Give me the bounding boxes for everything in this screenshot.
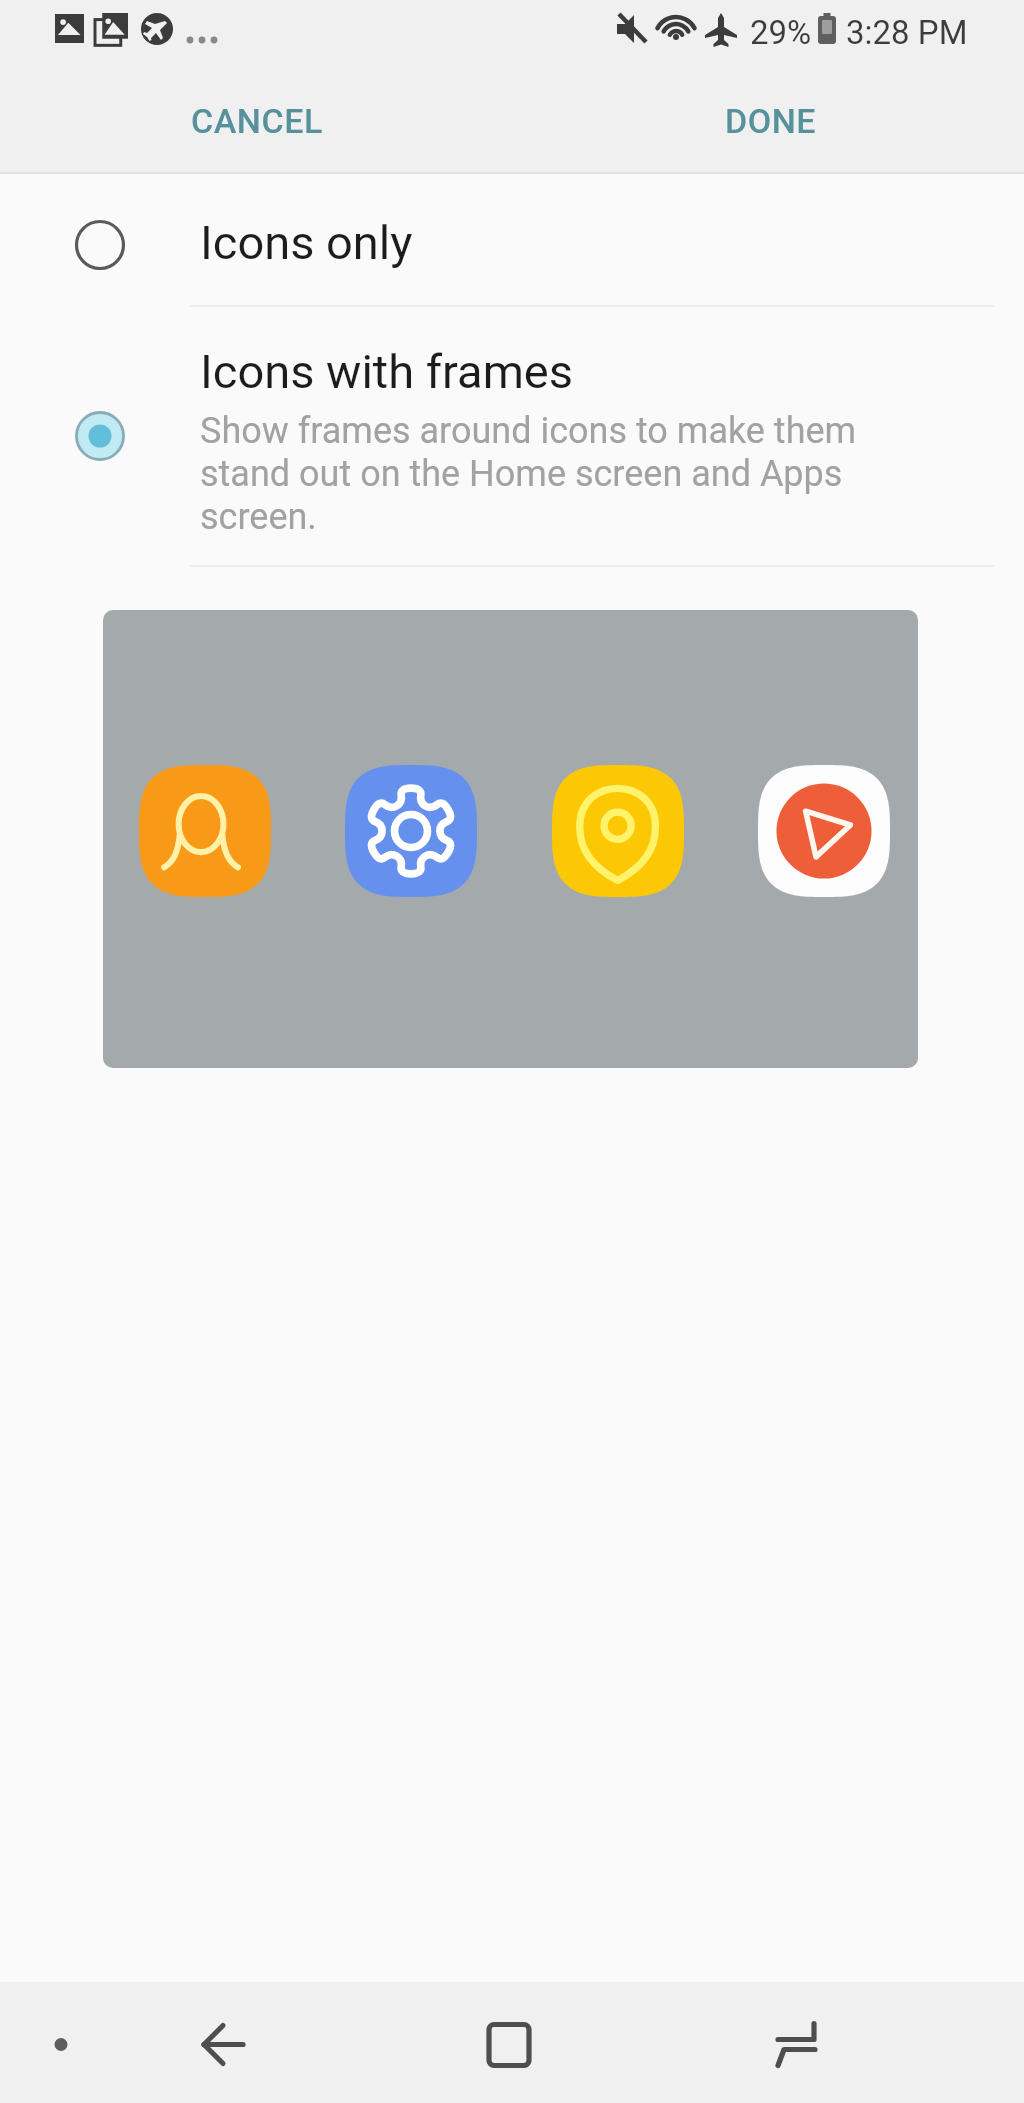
staticText: 3:28 PM (846, 13, 968, 52)
staticText: 29% (750, 13, 812, 52)
button[interactable]: Icons with frames (0, 307, 1024, 565)
staticText: CANCEL (191, 101, 323, 141)
button[interactable]: Back (162, 1982, 282, 2103)
staticText: Show frames around icons to make them st… (200, 410, 880, 538)
staticText: Icons only (200, 215, 413, 270)
button[interactable]: Icons only (0, 174, 1024, 305)
button[interactable]: Home (449, 1982, 569, 2103)
button[interactable]: DONE (699, 72, 843, 170)
button[interactable]: CANCEL (165, 72, 349, 170)
button[interactable]: Recents (736, 1982, 856, 2103)
button[interactable]: Menu (21, 1982, 101, 2103)
staticText: DONE (725, 101, 817, 141)
staticText: Icons with frames (200, 344, 574, 399)
